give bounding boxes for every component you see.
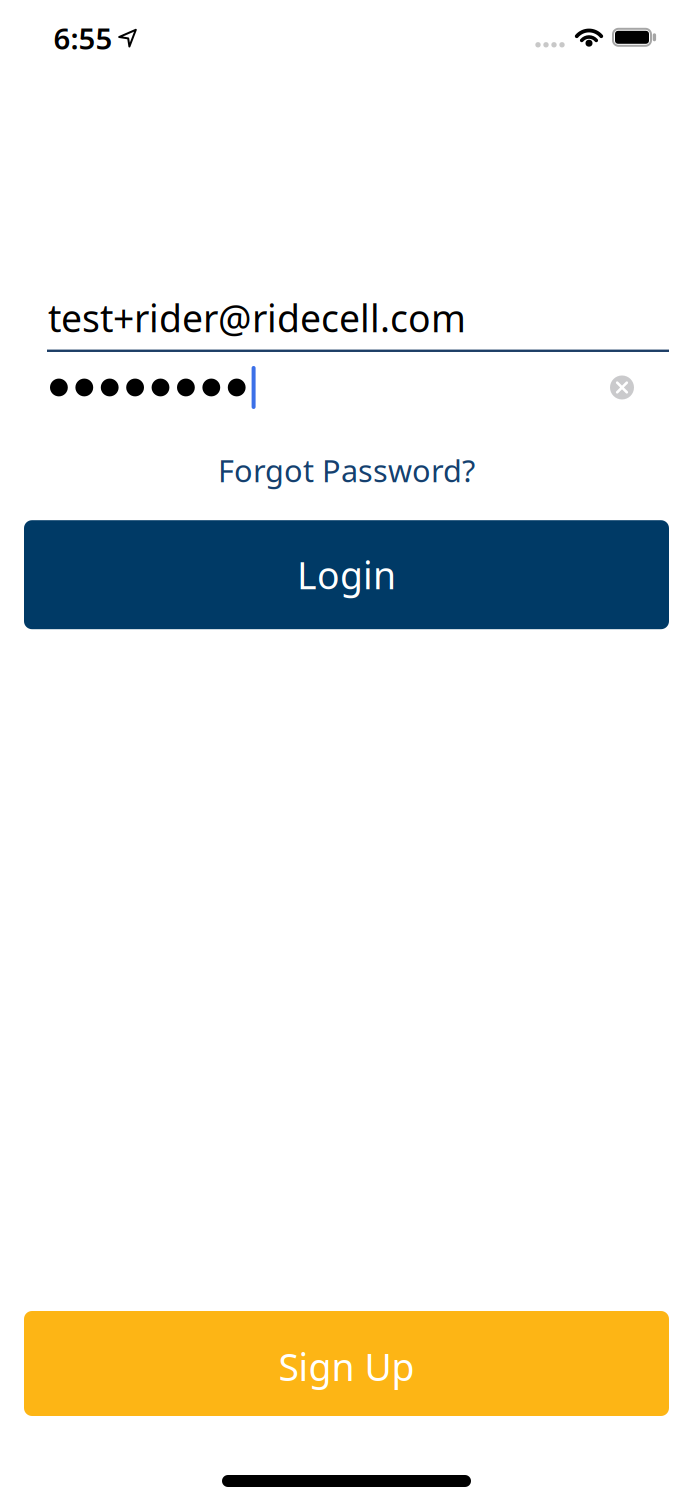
staticText: Login [297,550,396,599]
button[interactable]: Forgot Password? [218,450,475,491]
staticText: test+rider@ridecell.com [48,293,466,343]
button[interactable]: Login [24,520,669,629]
button[interactable]: Clear text [610,375,634,399]
button[interactable]: Sign Up [24,1311,669,1416]
staticText: Forgot Password? [218,450,475,491]
staticText: 6:55 [53,18,112,57]
staticText: Sign Up [278,1342,414,1391]
